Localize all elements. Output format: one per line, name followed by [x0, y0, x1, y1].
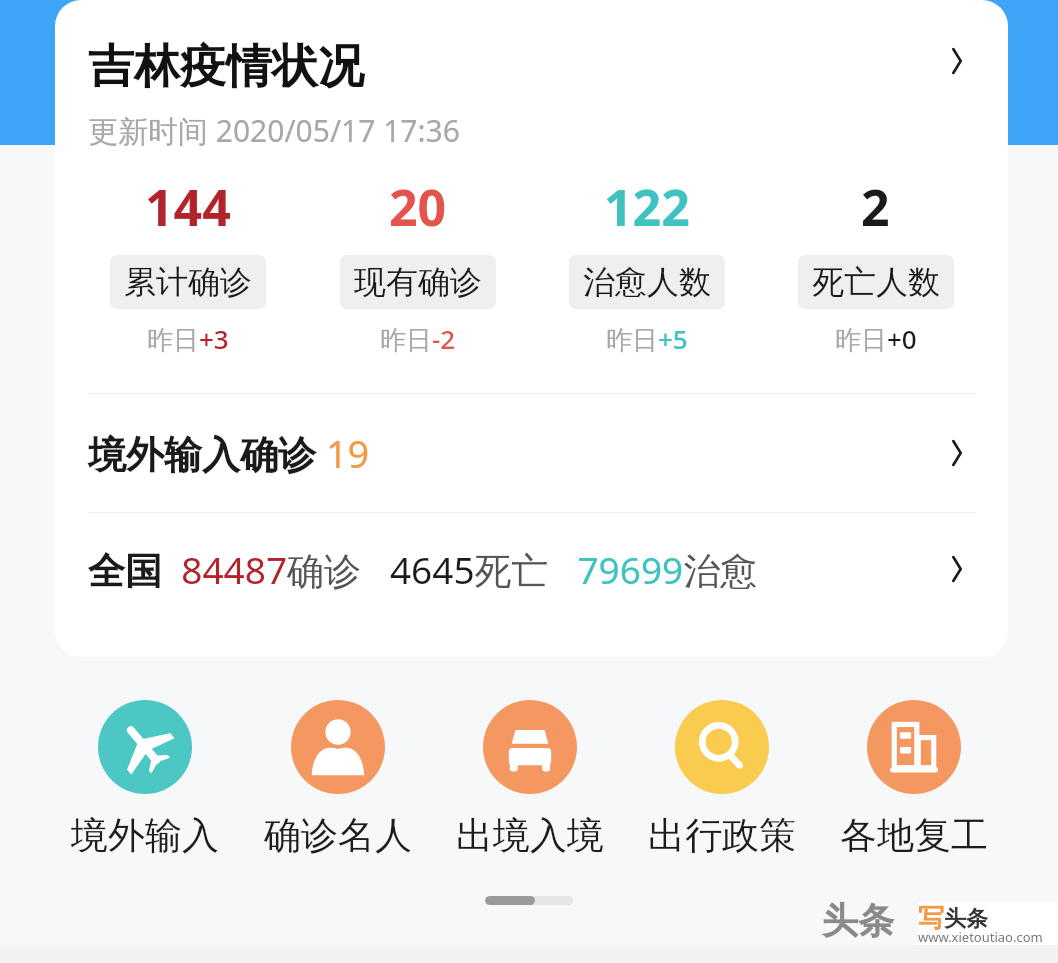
- button[interactable]: 144: [73, 173, 303, 357]
- staticText: 头条: [822, 898, 894, 943]
- other: 详情: [934, 38, 980, 84]
- button[interactable]: 出行政策: [626, 700, 818, 859]
- staticText: 昨日-2: [380, 321, 456, 357]
- staticText: 治愈人数: [583, 262, 711, 302]
- button[interactable]: 20: [303, 173, 532, 357]
- staticText: 累计确诊: [124, 262, 252, 302]
- staticText: 更新时间 2020/05/17 17:36: [88, 110, 460, 151]
- button[interactable]: 吉林疫情状况: [55, 0, 1008, 151]
- button[interactable]: 2: [761, 173, 990, 357]
- staticText: 现有确诊: [354, 262, 482, 302]
- staticText: www.xietoutiao.com: [918, 928, 1043, 946]
- staticText: 122: [604, 173, 690, 241]
- button[interactable]: 境外输入: [48, 700, 241, 859]
- button[interactable]: 确诊名人: [241, 700, 434, 859]
- staticText: 出行政策: [648, 812, 796, 859]
- staticText: 头条: [944, 905, 988, 933]
- button[interactable]: 122: [532, 173, 761, 357]
- button[interactable]: 各地复工: [818, 700, 1010, 859]
- button[interactable]: 境外输入确诊 19: [55, 394, 1008, 512]
- staticText: 各地复工: [840, 812, 988, 859]
- staticText: 昨日+5: [606, 321, 688, 357]
- staticText: 境外输入: [71, 812, 219, 859]
- staticText: 死亡人数: [812, 262, 940, 302]
- staticText: 昨日+3: [147, 321, 229, 357]
- staticText: 昨日+0: [835, 321, 917, 357]
- staticText: 20: [389, 173, 447, 241]
- staticText: 2: [861, 173, 890, 241]
- staticText: 境外输入确诊 19: [88, 427, 934, 479]
- staticText: 全国 84487确诊 4645死亡 79699治愈: [88, 544, 934, 595]
- staticText: 确诊名人: [264, 812, 412, 859]
- staticText: 出境入境: [456, 812, 604, 859]
- staticText: 吉林疫情状况: [88, 38, 364, 96]
- button[interactable]: 全国 84487确诊 4645死亡 79699治愈: [55, 513, 1008, 625]
- staticText: 144: [145, 173, 231, 241]
- button[interactable]: 出境入境: [434, 700, 626, 859]
- staticText: 写: [918, 902, 944, 935]
